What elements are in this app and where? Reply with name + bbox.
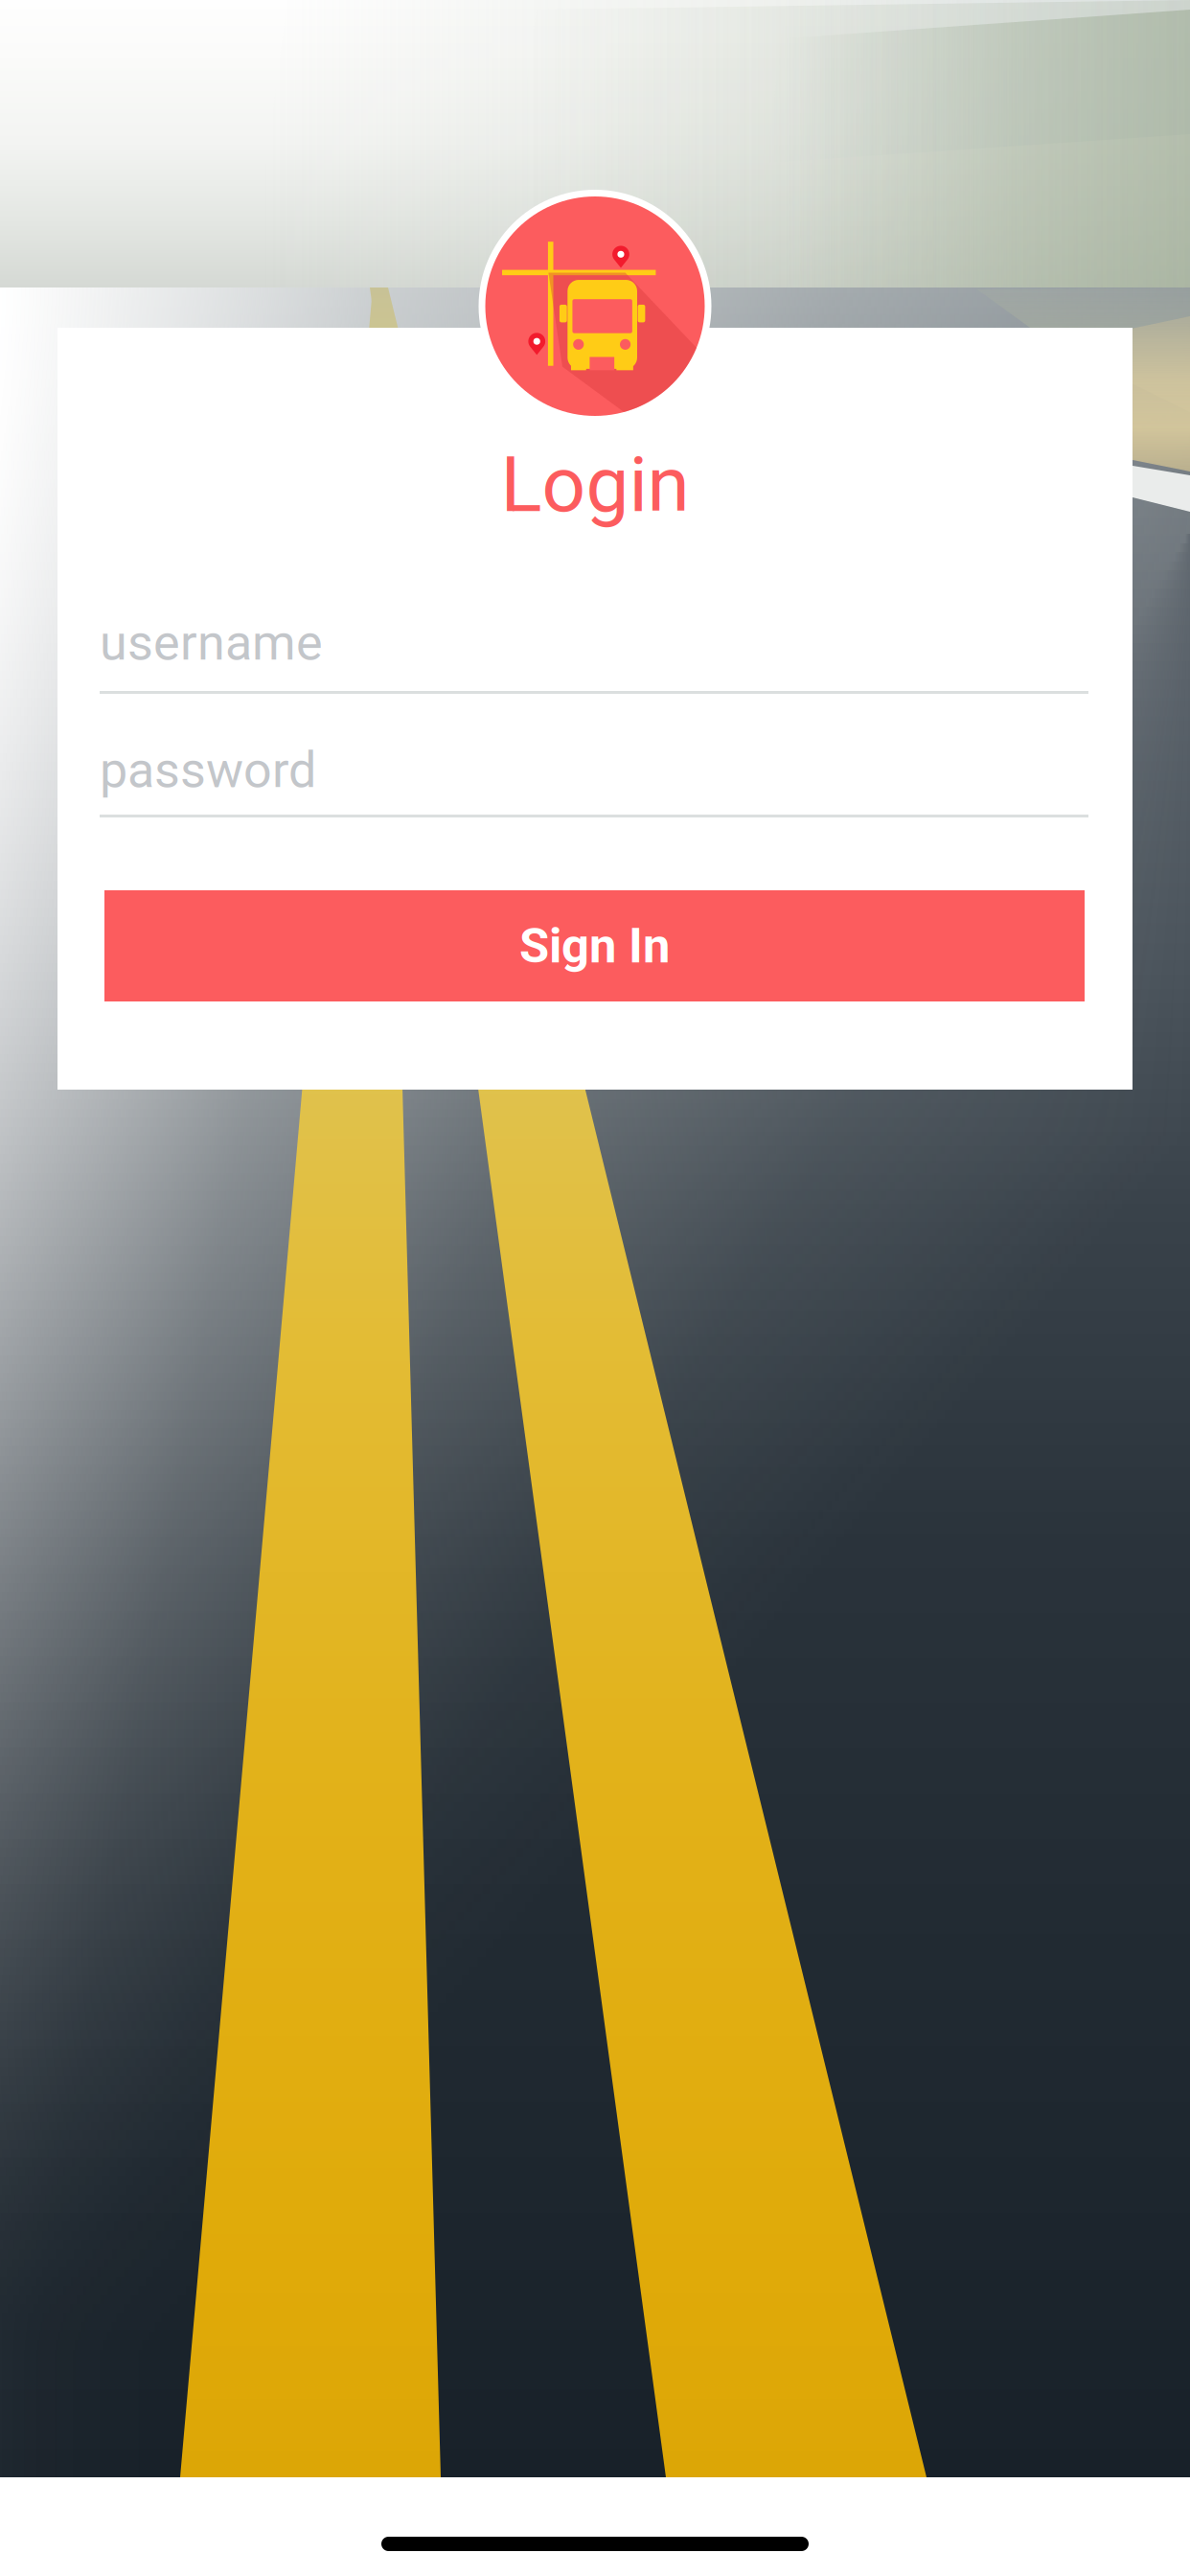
staticText: Login (501, 440, 689, 530)
staticText: Sign In (519, 917, 670, 974)
button[interactable]: Sign In (104, 890, 1085, 1001)
staticText: username (100, 613, 323, 672)
staticText: password (100, 741, 316, 799)
